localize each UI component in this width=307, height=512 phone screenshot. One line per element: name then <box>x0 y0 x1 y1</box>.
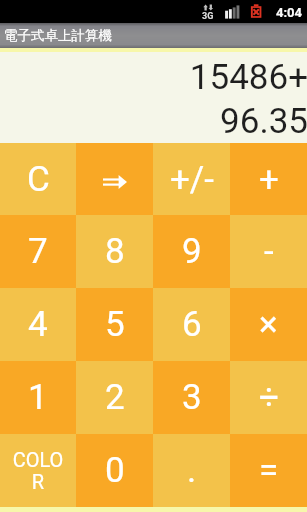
staticText: 3 <box>182 377 202 418</box>
staticText: 4:04 <box>276 5 303 20</box>
staticText: 9 <box>182 231 202 272</box>
staticText: 電子式卓上計算機 <box>4 27 112 44</box>
button[interactable]: 3 <box>153 361 230 434</box>
staticText: 5 <box>105 304 125 345</box>
button[interactable]: 0 <box>76 434 153 507</box>
staticText: COLOR <box>12 448 64 494</box>
staticText: 3G <box>202 11 214 22</box>
button[interactable]: Divide <box>230 361 307 434</box>
button[interactable]: Minus <box>230 215 307 288</box>
staticText: × <box>259 304 278 345</box>
staticText: 4 <box>28 304 48 345</box>
button[interactable]: 6 <box>153 288 230 361</box>
button[interactable]: 9 <box>153 215 230 288</box>
button[interactable]: Equals <box>230 434 307 507</box>
staticText: +/- <box>170 159 214 200</box>
button[interactable]: 7 <box>0 215 76 288</box>
staticText: 7 <box>28 231 48 272</box>
button[interactable]: 5 <box>76 288 153 361</box>
button[interactable]: Decimal point <box>153 434 230 507</box>
staticText: 1 <box>28 377 48 418</box>
staticText: 15486+ <box>189 57 307 98</box>
staticText: 0 <box>105 450 125 491</box>
button[interactable]: 4 <box>0 288 76 361</box>
staticText: 8 <box>105 231 125 272</box>
button[interactable]: Backspace <box>76 143 153 215</box>
button[interactable]: 8 <box>76 215 153 288</box>
staticText: = <box>259 450 279 491</box>
button[interactable]: 2 <box>76 361 153 434</box>
staticText: - <box>264 231 274 272</box>
staticText: 2 <box>105 377 125 418</box>
staticText: 96.35 <box>220 101 307 142</box>
staticText: + <box>259 159 279 200</box>
button[interactable]: Multiply <box>230 288 307 361</box>
staticText: C <box>27 159 50 200</box>
button[interactable]: COLOR <box>0 434 76 507</box>
button[interactable]: 1 <box>0 361 76 434</box>
button[interactable]: +/- <box>153 143 230 215</box>
staticText: 6 <box>182 304 202 345</box>
staticText: . <box>187 450 197 491</box>
button[interactable]: C <box>0 143 76 215</box>
button[interactable]: Plus <box>230 143 307 215</box>
staticText: ÷ <box>259 377 279 418</box>
